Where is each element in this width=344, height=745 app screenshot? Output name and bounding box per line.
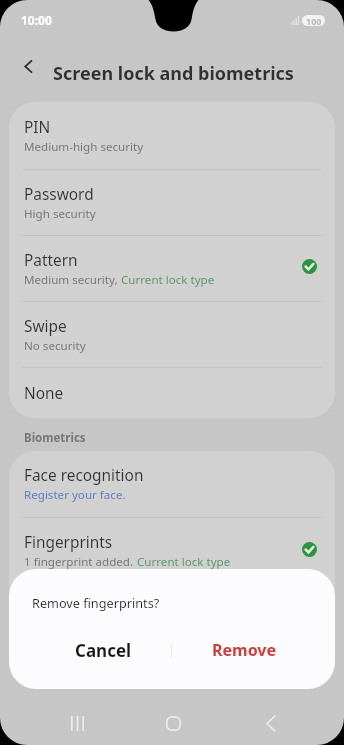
staticText: 1 fingerprint added. bbox=[24, 554, 137, 570]
button[interactable]: Remove bbox=[172, 625, 335, 675]
staticText: Register your face. bbox=[24, 487, 126, 503]
button[interactable]: Password bbox=[9, 170, 335, 235]
button[interactable]: PIN bbox=[9, 102, 335, 169]
staticText: Current lock type bbox=[121, 272, 215, 288]
staticText: Screen lock and biometrics bbox=[53, 61, 294, 86]
button[interactable]: Face recognition bbox=[9, 451, 335, 517]
button[interactable]: Back bbox=[14, 52, 42, 80]
staticText: Swipe bbox=[24, 316, 67, 337]
staticText: Medium-high security bbox=[24, 139, 144, 155]
staticText: High security bbox=[24, 206, 96, 222]
button[interactable]: Cancel bbox=[9, 625, 171, 675]
button[interactable]: Home bbox=[159, 709, 187, 737]
staticText: PIN bbox=[24, 117, 51, 138]
button[interactable]: Pattern bbox=[9, 236, 335, 301]
staticText: Current lock type bbox=[137, 554, 231, 570]
staticText: None bbox=[24, 383, 64, 404]
staticText: Biometrics bbox=[24, 430, 86, 446]
staticText: Remove fingerprints? bbox=[32, 594, 160, 611]
staticText: 10:00 bbox=[21, 12, 52, 28]
staticText: Remove bbox=[212, 639, 277, 661]
staticText: Face recognition bbox=[24, 465, 144, 486]
button[interactable]: None bbox=[9, 368, 335, 418]
button[interactable]: Back bbox=[256, 709, 284, 737]
button[interactable]: Fingerprints bbox=[9, 518, 335, 584]
staticText: 100 bbox=[306, 15, 322, 26]
staticText: No security bbox=[24, 338, 86, 354]
button[interactable]: Swipe bbox=[9, 302, 335, 367]
staticText: Fingerprints bbox=[24, 532, 113, 553]
staticText: Password bbox=[24, 184, 94, 205]
staticText: Cancel bbox=[75, 639, 132, 662]
button[interactable]: Recents bbox=[63, 709, 91, 737]
staticText: Medium security, bbox=[24, 272, 121, 288]
staticText: Pattern bbox=[24, 250, 78, 271]
